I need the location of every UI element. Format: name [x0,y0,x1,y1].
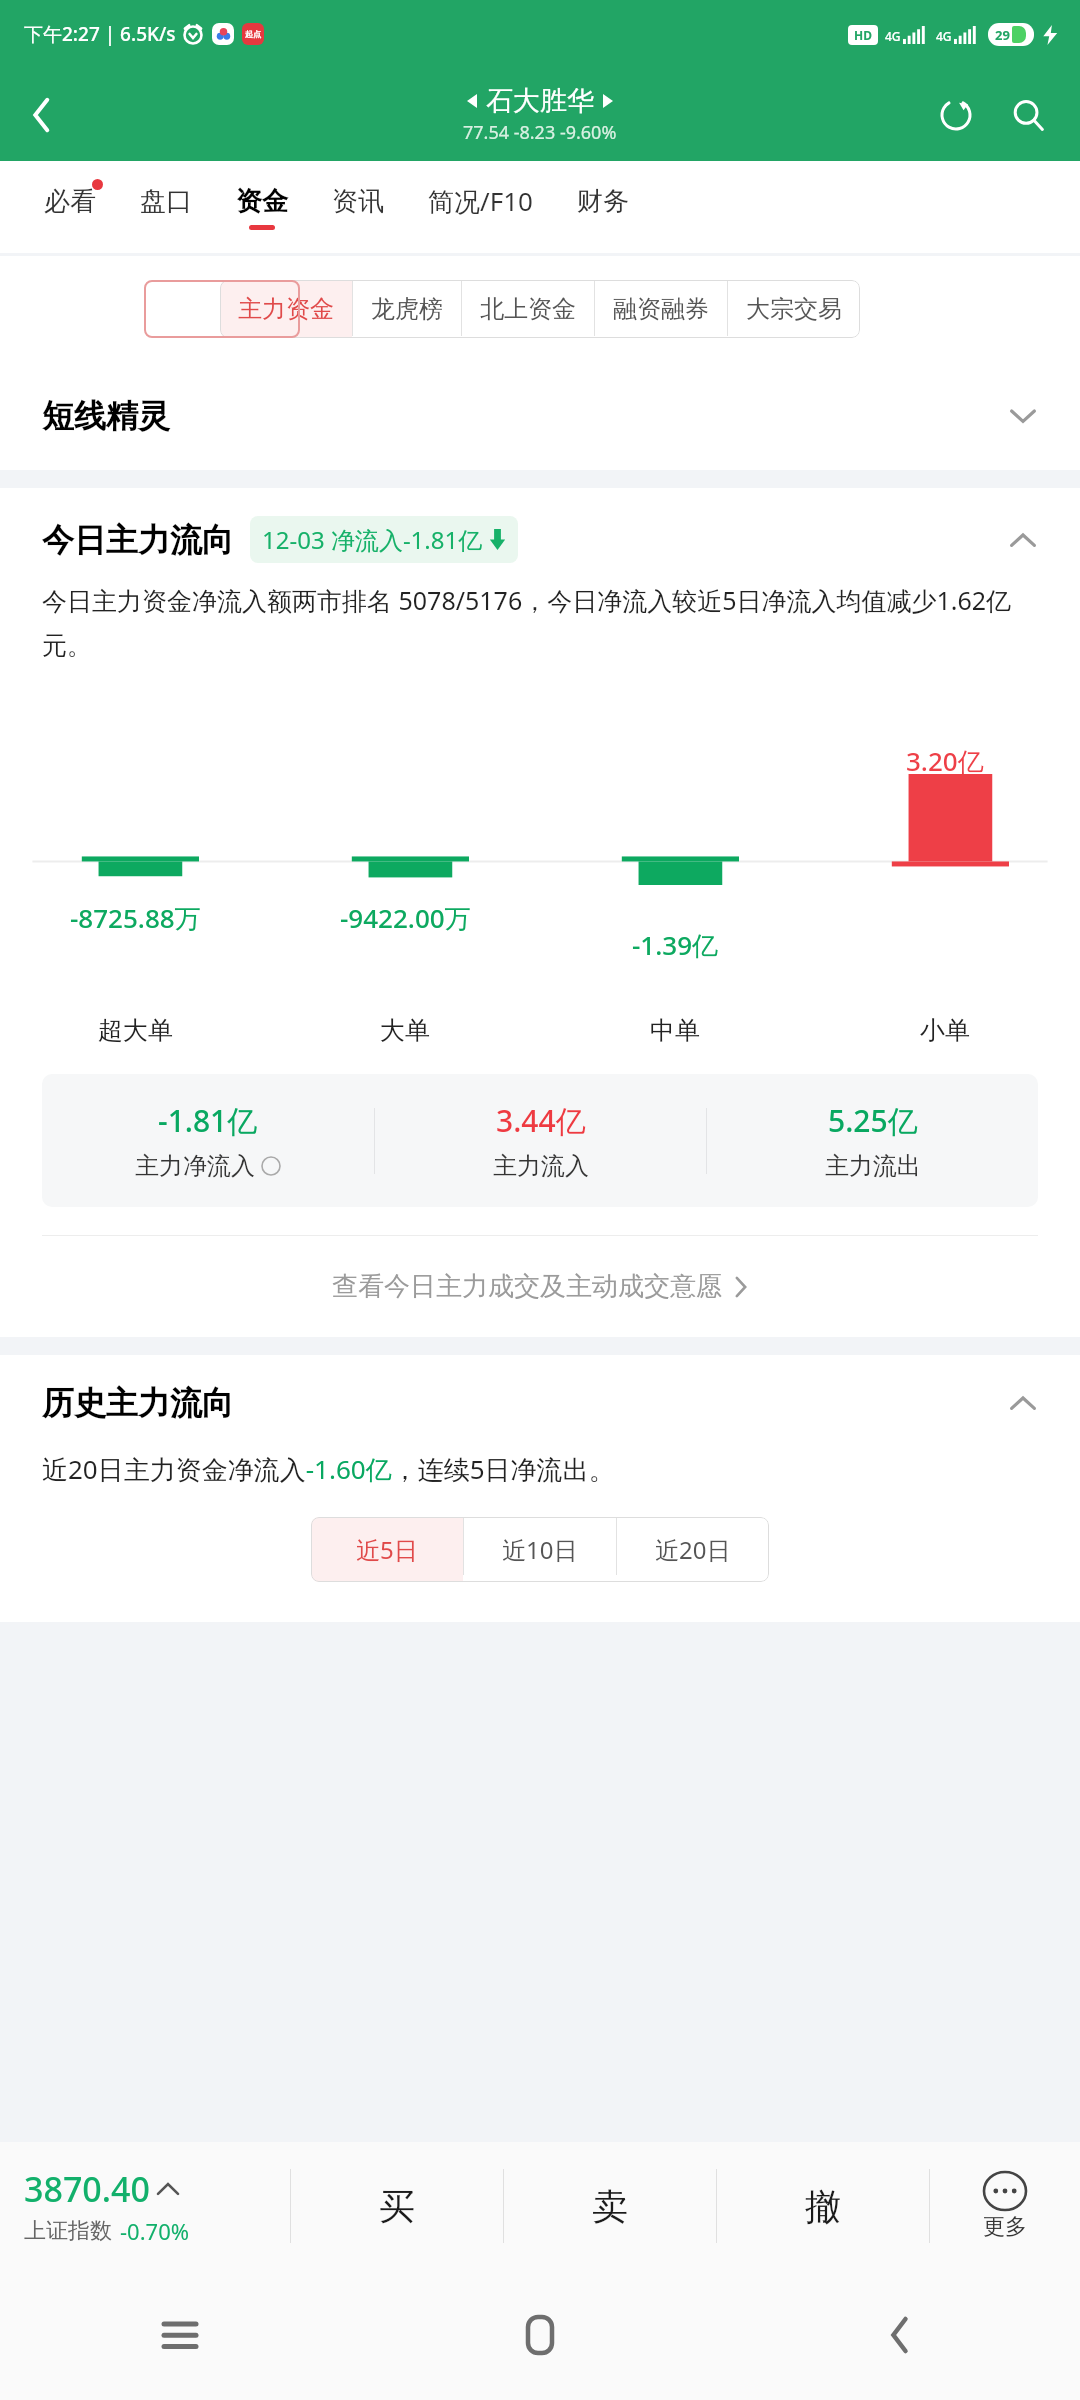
button[interactable]: 资金 [214,161,310,253]
staticText: 资金 [236,185,288,218]
staticText: 主力流出 [825,1151,921,1181]
staticText: -9422.00万 [340,900,471,936]
staticText: 主力流入 [493,1151,589,1181]
staticText: 简况/F10 [428,183,533,219]
staticText: 下午2:27 | 6.5K/s [24,21,176,47]
staticText: 查看今日主力成交及主动成交意愿 [332,1270,722,1303]
button[interactable]: 撤 [717,2142,929,2270]
staticText: 3.44亿 [496,1100,586,1141]
staticText: -0.70% [120,2216,190,2246]
staticText: 今日主力流向 [42,520,234,560]
staticText: 短线精灵 [42,396,170,436]
staticText: 资讯 [332,185,384,218]
button[interactable]: 大宗交易 [728,280,860,338]
button[interactable]: 卖 [504,2142,716,2270]
staticText: 小单 [920,1015,970,1046]
staticText: 必看 [44,185,96,218]
staticText: 近20日主力资金净流入-1.60亿，连续5日净流出。 [42,1451,615,1487]
staticText: 龙虎榜 [371,294,443,324]
staticText: 撤 [805,2184,841,2229]
staticText: 今日主力资金净流入额两市排名 5078/5176，今日净流入较近5日净流入均值减… [42,583,1038,661]
button[interactable]: Back [720,2270,1080,2400]
staticText: 买 [379,2184,415,2229]
button[interactable]: 今日主力流向 [0,488,1080,569]
button[interactable]: 历史主力流向 [0,1355,1080,1451]
staticText: 历史主力流向 [42,1383,234,1423]
button[interactable]: Refresh [920,79,992,151]
staticText: 起点 [245,29,261,39]
staticText: 主力净流入 [135,1151,255,1181]
staticText: 大单 [380,1015,430,1046]
staticText: 超大单 [98,1015,173,1046]
staticText: 近20日 [655,1533,731,1566]
button[interactable]: 查看今日主力成交及主动成交意愿 [0,1236,1080,1337]
button[interactable]: 近10日 [464,1517,616,1582]
button[interactable]: 主力资金 [220,280,352,338]
button[interactable]: 3870.40 [0,2166,290,2246]
button[interactable]: Search [992,79,1064,151]
button[interactable]: 必看 [22,161,118,253]
staticText: 近10日 [502,1533,578,1566]
staticText: 3.20亿 [906,743,984,779]
button[interactable]: 龙虎榜 [353,280,461,338]
staticText: 上证指数 [24,2217,112,2245]
staticText: 主力资金 [238,294,334,324]
button[interactable]: 盘口 [118,161,214,253]
button[interactable]: 近20日 [617,1517,769,1582]
staticText: 财务 [577,185,629,218]
staticText: -1.81亿 [158,1100,258,1141]
staticText: 中单 [650,1015,700,1046]
button[interactable]: 简况/F10 [406,161,555,253]
staticText: 3870.40 [24,2166,150,2212]
button[interactable]: 更多 [930,2142,1080,2270]
button[interactable]: Back [0,73,84,157]
staticText: -1.39亿 [632,927,719,963]
staticText: -8725.88万 [70,900,201,936]
staticText: HD [854,27,872,43]
staticText: 大宗交易 [746,294,842,324]
staticText: 卖 [592,2184,628,2229]
staticText: 4G [936,28,952,44]
button[interactable]: 近5日 [311,1517,463,1582]
staticText: 5.25亿 [828,1100,918,1141]
button[interactable]: 融资融券 [595,280,727,338]
staticText: 更多 [983,2213,1027,2241]
button[interactable]: Home [360,2270,720,2400]
button[interactable]: 资讯 [310,161,406,253]
button[interactable]: 北上资金 [462,280,594,338]
staticText: 盘口 [140,185,192,218]
staticText: 融资融券 [613,294,709,324]
staticText: 29 [995,26,1010,43]
staticText: 石大胜华 [486,84,594,118]
staticText: 77.54 -8.23 -9.60% [463,120,617,145]
button[interactable]: Recents [0,2270,360,2400]
staticText: 近5日 [356,1533,418,1566]
staticText: 4G [885,28,901,44]
button[interactable]: 财务 [555,161,651,253]
button[interactable]: 买 [291,2142,503,2270]
staticText: 北上资金 [480,294,576,324]
button[interactable]: 短线精灵 [0,362,1080,470]
staticText: 12-03 净流入-1.81亿 [262,523,483,556]
button[interactable]: 石大胜华 [463,84,617,145]
